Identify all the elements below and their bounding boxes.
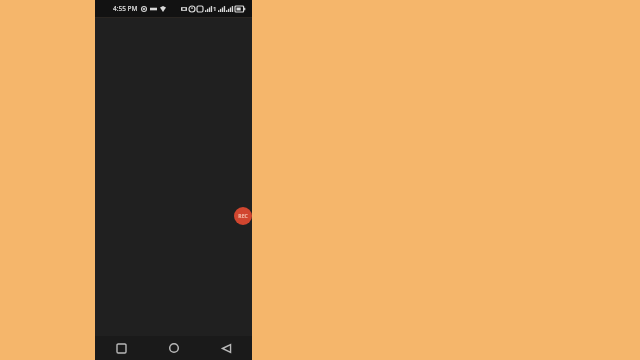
staticText: 4:55 PM: [113, 4, 138, 13]
button[interactable]: Record: [234, 207, 252, 225]
staticText: 1: [213, 5, 217, 13]
button[interactable]: Home: [148, 336, 200, 360]
button[interactable]: Recent apps: [95, 336, 148, 360]
button[interactable]: Back: [200, 336, 252, 360]
staticText: REC: [238, 213, 248, 220]
